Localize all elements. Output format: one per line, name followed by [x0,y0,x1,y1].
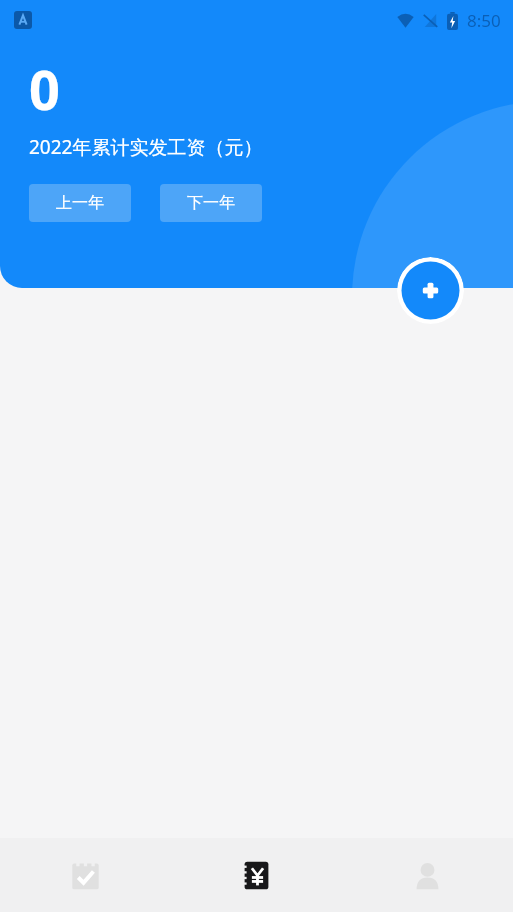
staticText: 2022年累计实发工资（元） [29,134,263,160]
button[interactable]: 账本 [171,838,342,912]
staticText: 上一年 [56,193,104,213]
button[interactable]: 添加 [397,257,464,324]
button[interactable]: 上一年 [29,184,131,222]
button[interactable]: 下一年 [160,184,262,222]
staticText: 8:50 [467,9,501,32]
staticText: 下一年 [187,193,235,213]
button[interactable]: 工资条 [0,838,171,912]
staticText: 0 [29,52,60,126]
